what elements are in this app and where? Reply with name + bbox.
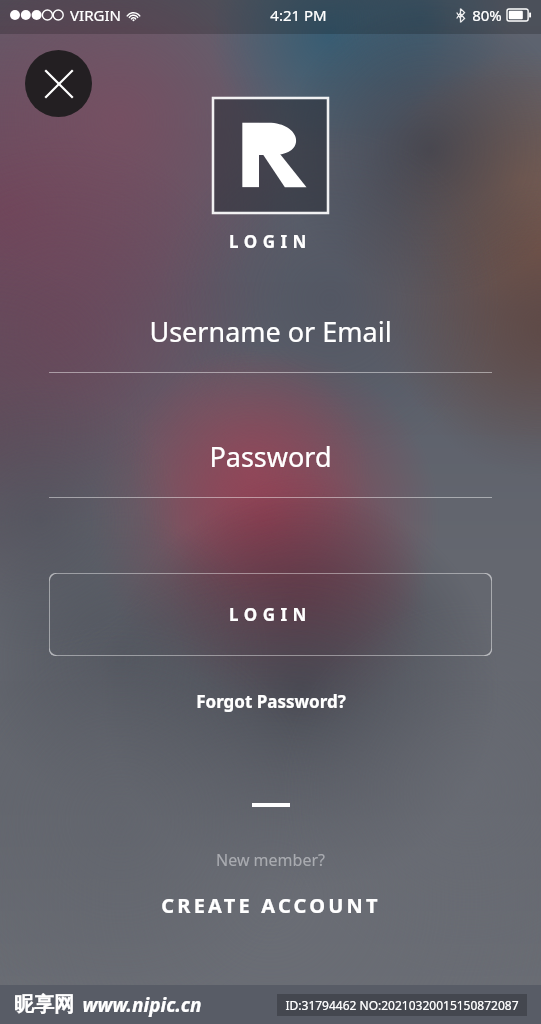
button[interactable]: CREATE ACCOUNT (145, 888, 397, 923)
button[interactable] (213, 98, 328, 213)
button[interactable]: Close (25, 50, 92, 117)
button[interactable]: Password (49, 438, 492, 498)
staticText: Forgot Password? (196, 690, 346, 713)
staticText: LOGIN (229, 603, 312, 626)
staticText: CREATE ACCOUNT (161, 892, 381, 919)
button[interactable]: Username or Email (49, 313, 492, 373)
staticText: 昵享网 (14, 992, 74, 1017)
button[interactable]: Forgot Password? (180, 684, 362, 719)
staticText: 4:21 PM (270, 5, 327, 25)
staticText: New member? (216, 849, 325, 871)
staticText: ID:31794462 NO:20210320015150872087 (285, 997, 519, 1013)
button[interactable]: LOGIN (49, 573, 492, 656)
staticText: VIRGIN (70, 5, 121, 25)
staticText: LOGIN (229, 230, 312, 253)
staticText: Username or Email (149, 313, 392, 350)
staticText: www.nipic.cn (82, 992, 202, 1018)
staticText: Password (209, 438, 332, 475)
staticText: 80% (472, 5, 502, 25)
